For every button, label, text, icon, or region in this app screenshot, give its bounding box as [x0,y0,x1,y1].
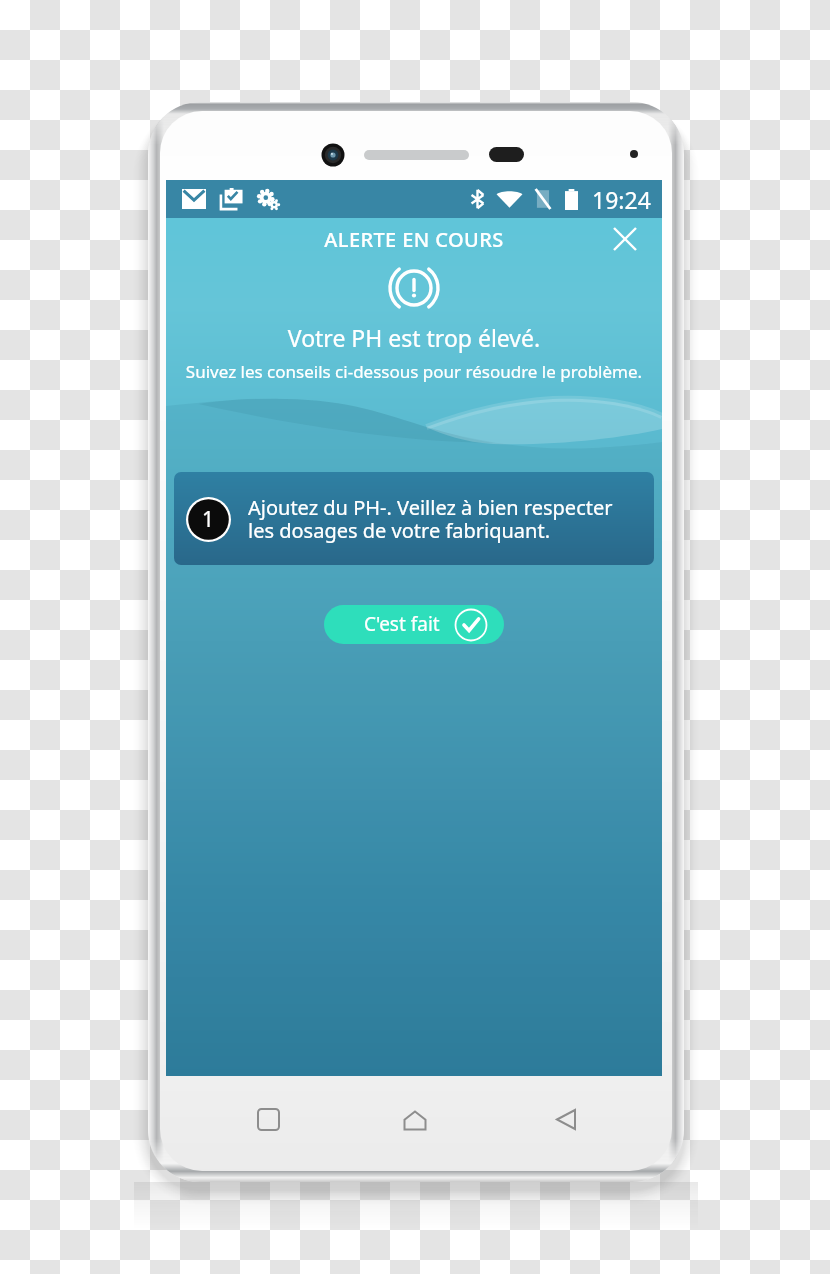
staticText: C'est fait [364,611,440,637]
staticText: Votre PH est trop élevé. [166,322,662,353]
button[interactable]: 1 [174,472,654,565]
staticText: 1 [202,505,215,534]
button[interactable]: Home [403,1108,427,1132]
staticText: ALERTE EN COURS [166,226,662,253]
staticText: Ajoutez du PH-. Veillez à bien respecter… [248,494,613,544]
staticText: Suivez les conseils ci-dessous pour réso… [166,360,662,383]
button[interactable]: Fermer [607,221,643,257]
button[interactable]: Recents [256,1107,280,1131]
button[interactable]: Back [554,1107,578,1131]
button[interactable]: C'est fait [324,605,504,644]
staticText: 19:24 [592,184,651,215]
